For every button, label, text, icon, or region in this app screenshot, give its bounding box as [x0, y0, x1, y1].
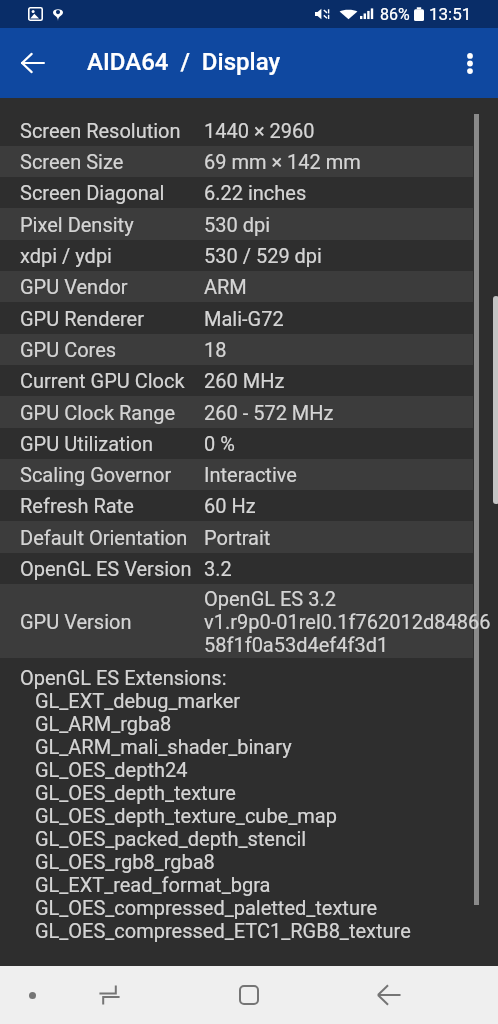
button[interactable]: GPU Version [0, 584, 473, 658]
staticText: 1440 × 2960 [204, 119, 315, 142]
button[interactable]: GPU Vendor [0, 271, 473, 302]
button[interactable]: Assistant [3, 966, 61, 1024]
staticText: xdpi / ydpi [20, 244, 204, 267]
staticText: 260 - 572 MHz [204, 401, 334, 424]
staticText: GPU Version [20, 610, 204, 633]
staticText: Screen Resolution [20, 119, 204, 142]
button[interactable]: Screen Resolution [0, 114, 473, 146]
staticText: Interactive [204, 463, 297, 486]
staticText: 13:51 [429, 4, 472, 24]
staticText: GPU Cores [20, 338, 204, 361]
button[interactable]: Current GPU Clock [0, 365, 473, 396]
button[interactable]: Default Orientation [0, 521, 473, 553]
staticText: GPU Renderer [20, 307, 204, 330]
button[interactable]: More options [442, 28, 498, 98]
button[interactable]: Navigate up [0, 28, 66, 98]
button[interactable]: Scaling Governor [0, 459, 473, 490]
staticText: OpenGL ES 3.2 v1.r9p0-01rel0.1f762012d84… [204, 587, 473, 656]
staticText: GPU Utilization [20, 432, 204, 455]
staticText: Pixel Density [20, 213, 204, 236]
button[interactable]: GPU Cores [0, 334, 473, 365]
staticText: Mali-G72 [204, 307, 284, 330]
staticText: Portrait [204, 526, 271, 549]
staticText: Refresh Rate [20, 494, 204, 517]
button[interactable]: Back [360, 966, 418, 1024]
staticText: OpenGL ES Version [20, 557, 204, 580]
staticText: Default Orientation [20, 526, 204, 549]
staticText: Screen Diagonal [20, 181, 204, 204]
staticText: AIDA64 / Display [87, 48, 281, 76]
button[interactable]: Home [220, 966, 278, 1024]
staticText: 18 [204, 338, 227, 361]
button[interactable]: Recent apps [80, 966, 138, 1024]
staticText: OpenGL ES Extensions: GL_EXT_debug_marke… [20, 666, 411, 942]
staticText: ARM [204, 275, 247, 298]
staticText: 0 % [204, 432, 235, 455]
staticText: 6.22 inches [204, 181, 307, 204]
staticText: 86% [380, 5, 410, 24]
button[interactable]: Screen Diagonal [0, 177, 473, 208]
staticText: GPU Vendor [20, 275, 204, 298]
button[interactable]: GPU Renderer [0, 302, 473, 334]
button[interactable]: xdpi / ydpi [0, 240, 473, 271]
staticText: 530 / 529 dpi [204, 244, 322, 267]
staticText: Screen Size [20, 150, 204, 173]
staticText: 3.2 [204, 557, 232, 580]
staticText: 530 dpi [204, 213, 271, 236]
button[interactable]: GPU Utilization [0, 428, 473, 459]
staticText: GPU Clock Range [20, 401, 204, 424]
button[interactable]: Refresh Rate [0, 490, 473, 521]
staticText: 69 mm × 142 mm [204, 150, 361, 173]
staticText: 60 Hz [204, 494, 256, 517]
button[interactable]: Pixel Density [0, 208, 473, 240]
button[interactable]: GPU Clock Range [0, 396, 473, 428]
staticText: Current GPU Clock [20, 369, 204, 392]
button[interactable]: OpenGL ES Version [0, 553, 473, 584]
button[interactable]: Screen Size [0, 146, 473, 177]
staticText: 260 MHz [204, 369, 285, 392]
staticText: Scaling Governor [20, 463, 204, 486]
